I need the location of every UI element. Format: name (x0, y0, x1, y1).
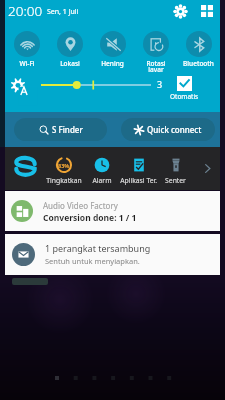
staticText: 20:00 (8, 2, 43, 20)
button[interactable]: More (194, 147, 220, 190)
button[interactable]: 1 perangkat tersambung (5, 234, 220, 275)
button[interactable]: Otomatis (170, 76, 199, 101)
staticText: Lokasi (60, 59, 80, 68)
staticText: Bluetooth (183, 59, 214, 68)
button[interactable]: Audio Video Factory (5, 191, 220, 231)
staticText: Tingkatkan (46, 176, 82, 185)
staticText: Audio Video Factory (43, 200, 118, 211)
staticText: Rotasi layar (146, 59, 166, 72)
staticText: Otomatis (170, 92, 199, 101)
button[interactable]: 83% (45, 149, 83, 192)
button[interactable]: Aplikasi Ter.. (120, 149, 157, 192)
staticText: 1 perangkat tersambung (45, 242, 151, 254)
staticText: S Finder (52, 124, 83, 135)
button[interactable]: Rotasi layar (134, 22, 177, 72)
button[interactable]: Bluetooth (177, 22, 220, 72)
button[interactable]: Lokasi (48, 22, 91, 72)
button[interactable]: Settings (170, 1, 190, 21)
button[interactable]: Hening (91, 22, 134, 72)
button[interactable]: Quick connect (121, 118, 215, 141)
button[interactable]: Samsung (5, 147, 45, 190)
staticText: Wi-Fi (19, 59, 35, 68)
button[interactable]: Wi-Fi (5, 22, 48, 72)
staticText: 83% (58, 162, 70, 169)
button[interactable]: Edit quick settings (197, 1, 217, 21)
staticText: Aplikasi Ter.. (120, 176, 157, 185)
staticText: 3 (157, 78, 163, 90)
staticText: Sen, 1 Juli (47, 7, 79, 17)
staticText: Sentuh untuk menyiapkan. (45, 256, 140, 266)
button[interactable]: Alarm (83, 149, 120, 192)
button[interactable]: Senter (157, 149, 194, 192)
button[interactable]: S Finder (14, 118, 107, 141)
staticText: Conversion done: 1 / 1 (43, 212, 137, 224)
staticText: Alarm (92, 176, 112, 185)
staticText: Senter (165, 176, 186, 185)
staticText: Quick connect (147, 124, 202, 135)
staticText: Hening (101, 59, 124, 68)
